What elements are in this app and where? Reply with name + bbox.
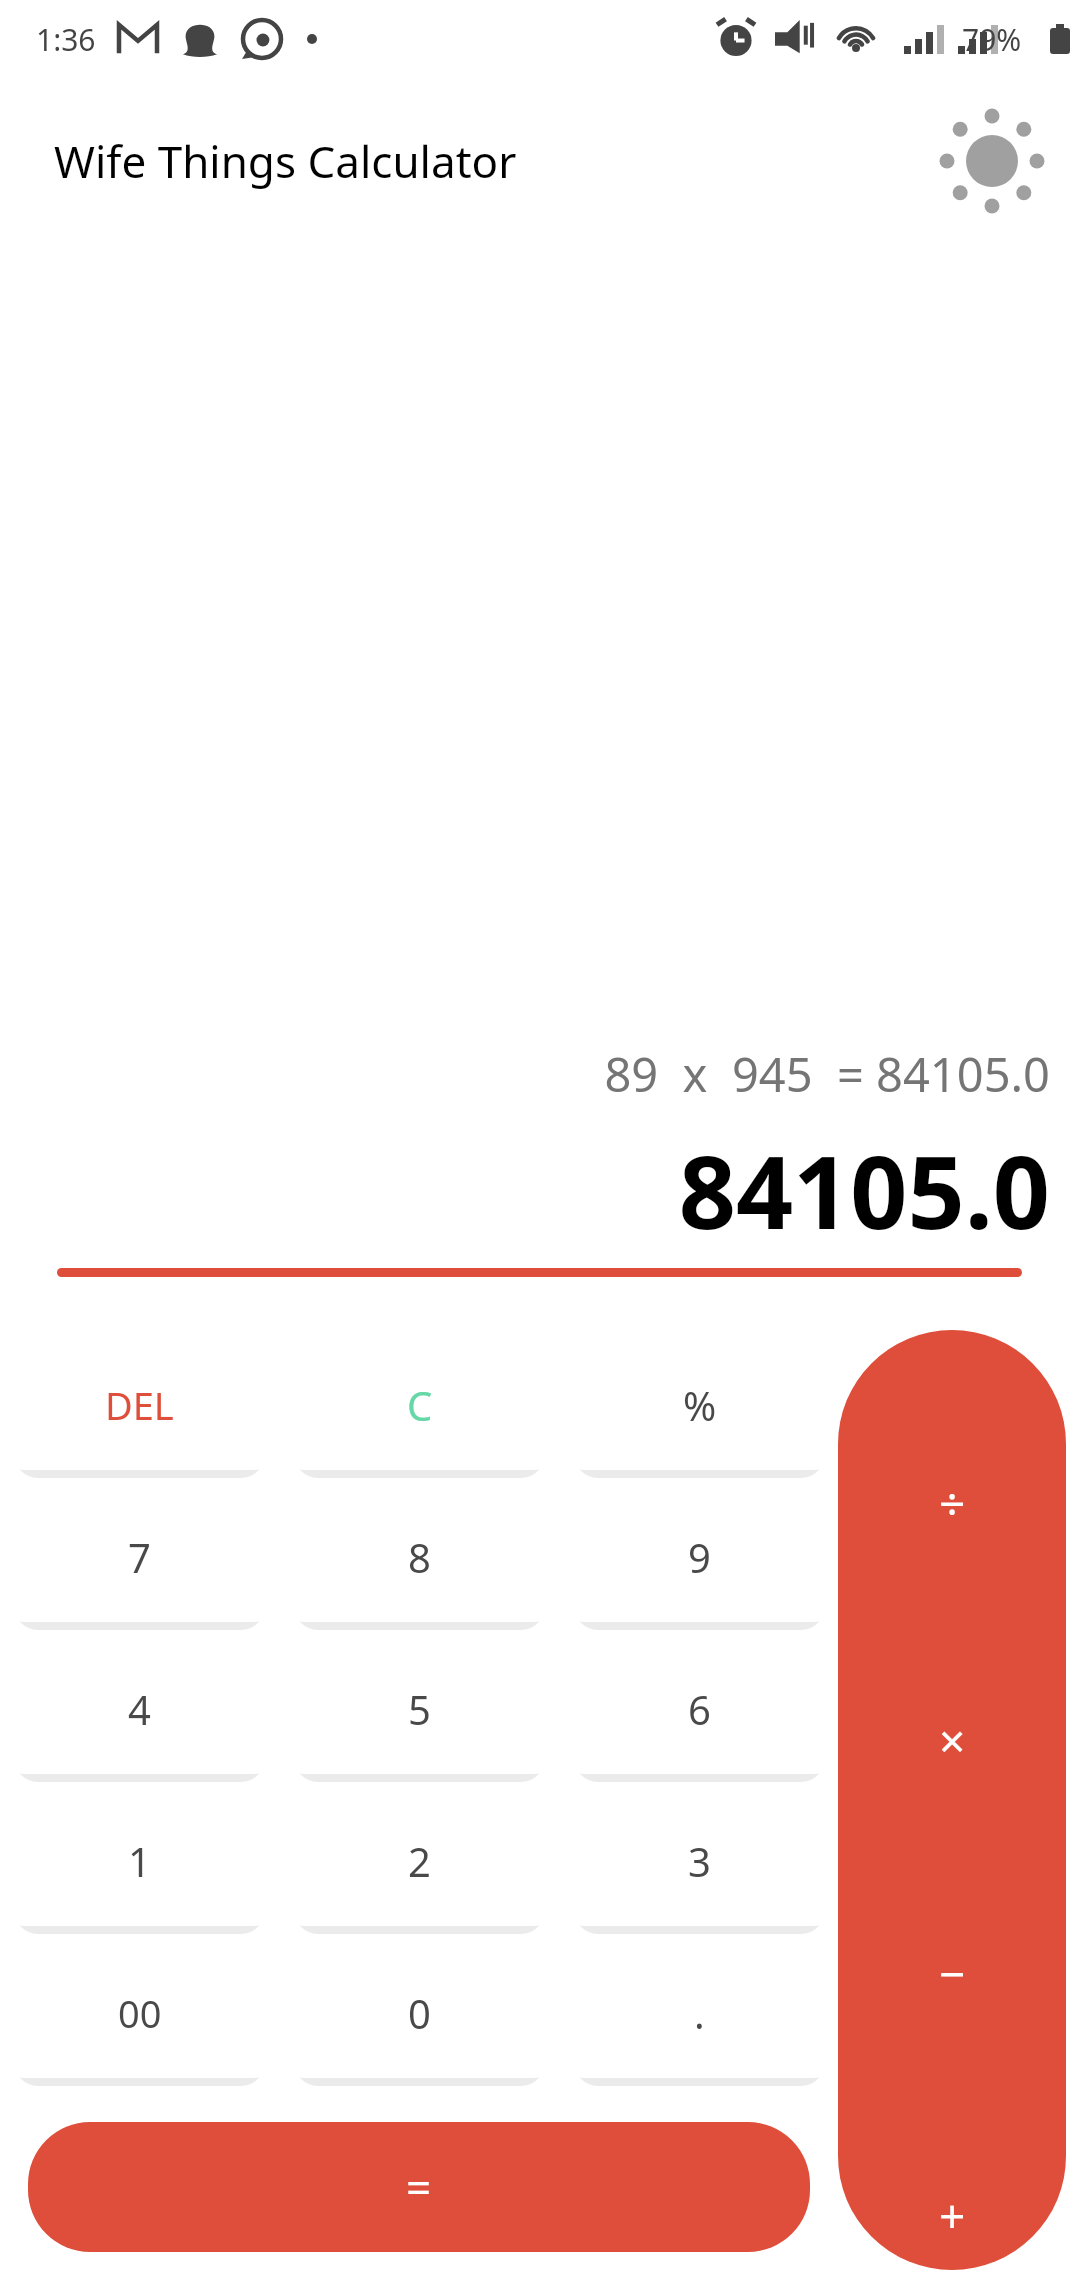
button[interactable]: × (838, 1685, 1066, 1795)
staticText: 9 (688, 1530, 711, 1584)
staticText: = (406, 2157, 432, 2217)
staticText: × (939, 1709, 966, 1772)
button[interactable]: = (28, 2122, 810, 2252)
button[interactable]: 1 (12, 1796, 267, 1926)
staticText: 84105.0 (0, 1122, 1050, 1258)
staticText: 2 (408, 1834, 431, 1888)
button[interactable]: 7 (12, 1492, 267, 1622)
staticText: 6 (688, 1682, 711, 1736)
staticText: Wife Things Calculator (54, 131, 517, 191)
staticText: 4 (128, 1682, 151, 1736)
staticText: 3 (688, 1834, 711, 1888)
staticText: 1 (128, 1834, 151, 1888)
button[interactable]: . (572, 1948, 827, 2078)
staticText: 79% (962, 19, 1022, 60)
button[interactable]: DEL (12, 1340, 267, 1470)
staticText: 0 (408, 1986, 431, 2040)
staticText: + (939, 2184, 966, 2247)
staticText: 00 (118, 1987, 162, 2039)
button[interactable]: 6 (572, 1644, 827, 1774)
button[interactable]: % (572, 1340, 827, 1470)
staticText: 89 x 945 = 84105.0 (0, 1042, 1050, 1106)
staticText: 1:36 (36, 19, 96, 60)
staticText: ÷ (939, 1472, 966, 1535)
button[interactable]: 00 (12, 1948, 267, 2078)
button[interactable]: 9 (572, 1492, 827, 1622)
staticText: 8 (408, 1530, 431, 1584)
staticText: % (683, 1378, 717, 1432)
button[interactable]: 2 (292, 1796, 547, 1926)
staticText: 5 (408, 1682, 431, 1736)
staticText: − (939, 1942, 966, 2005)
staticText: DEL (105, 1379, 174, 1431)
button[interactable]: Toggle theme brightness (944, 122, 1040, 200)
button[interactable]: 5 (292, 1644, 547, 1774)
button[interactable]: + (838, 2160, 1066, 2270)
button[interactable]: 4 (12, 1644, 267, 1774)
staticText: C (407, 1378, 433, 1432)
button[interactable]: 0 (292, 1948, 547, 2078)
button[interactable]: 3 (572, 1796, 827, 1926)
staticText: . (694, 1986, 705, 2040)
button[interactable]: C (292, 1340, 547, 1470)
button[interactable]: ÷ (838, 1448, 1066, 1558)
button[interactable]: − (838, 1918, 1066, 2028)
staticText: 7 (128, 1530, 151, 1584)
button[interactable]: 8 (292, 1492, 547, 1622)
